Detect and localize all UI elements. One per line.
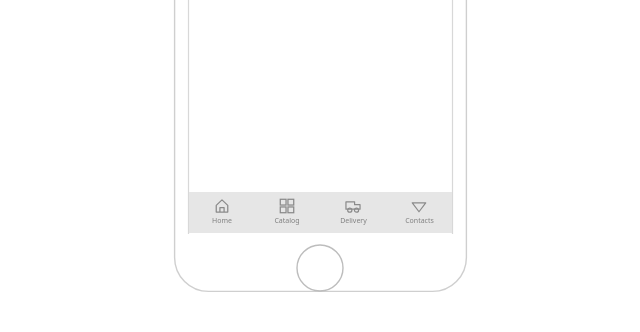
staticText: Catalog [274,216,300,226]
button[interactable]: Contacts [386,192,452,233]
staticText: Contacts [405,216,434,226]
button[interactable]: Catalog [254,192,320,233]
staticText: Delivery [340,216,367,226]
button[interactable]: Home button [296,244,344,292]
button[interactable]: Delivery [320,192,386,233]
button[interactable]: Home [189,192,254,233]
staticText: Home [212,216,232,226]
